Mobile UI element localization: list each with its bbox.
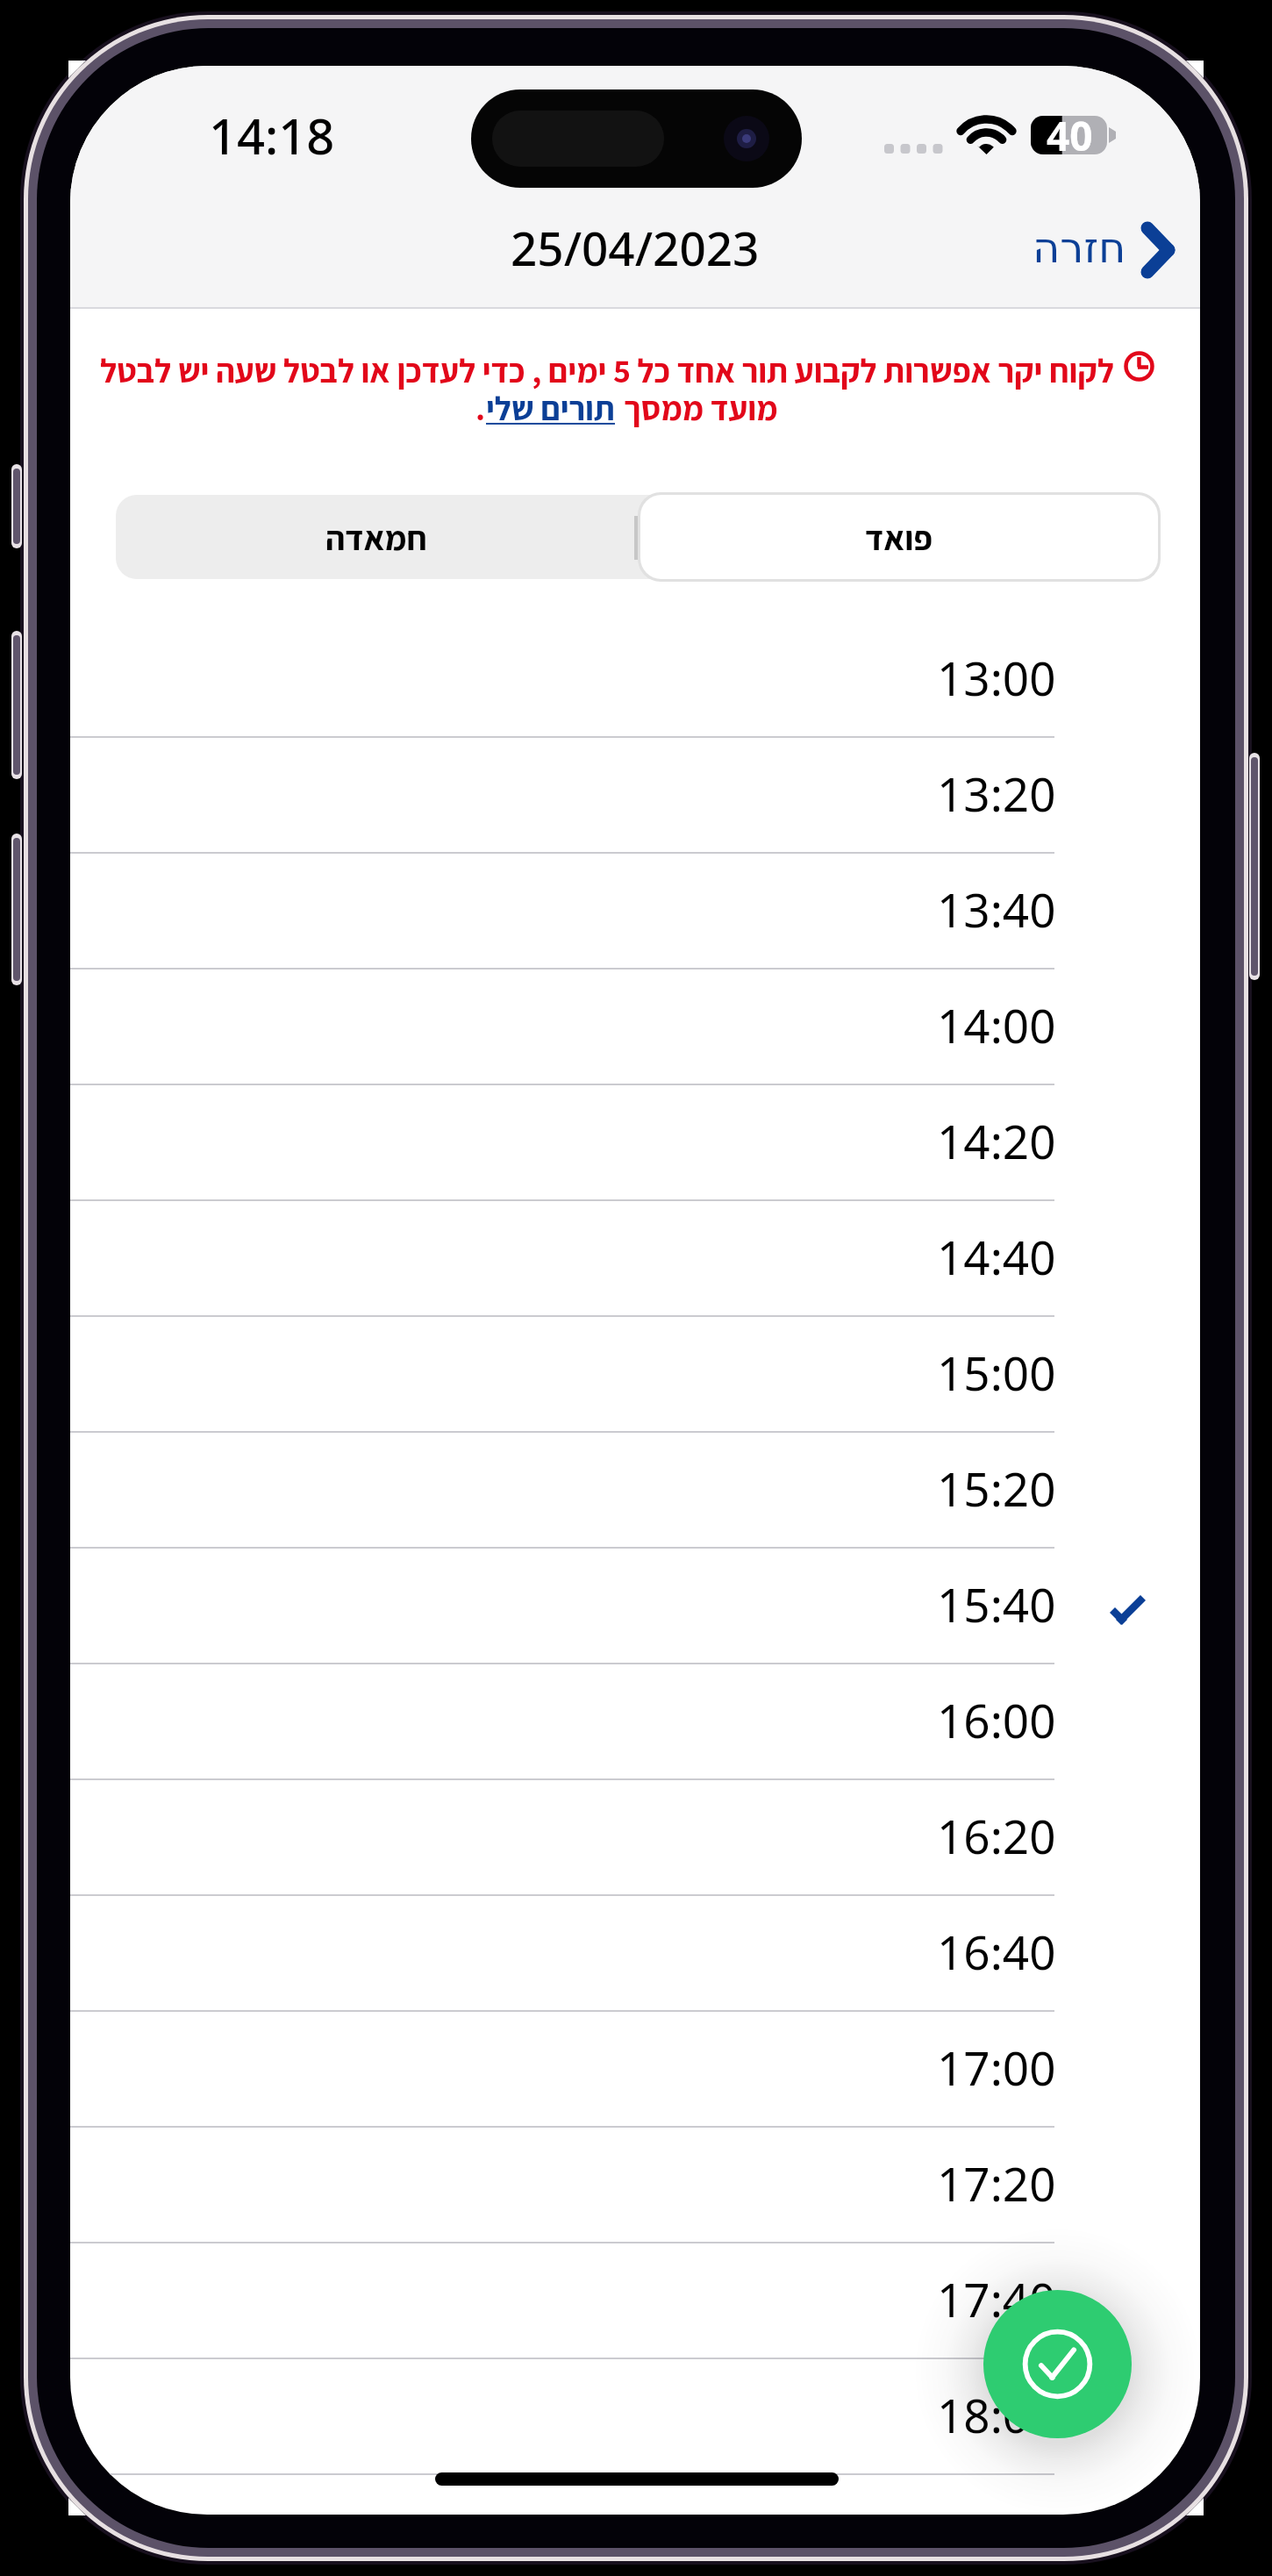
button[interactable]: 14:40 [70,1201,1200,1317]
button[interactable]: 16:40 [70,1896,1200,2012]
staticText: 14:20 [937,1109,1056,1172]
staticText: 15:00 [937,1341,1056,1404]
staticText: 15:40 [937,1572,1056,1635]
button[interactable]: 13:40 [70,854,1200,970]
button[interactable]: חמאדה [116,495,637,579]
button[interactable]: 16:20 [70,1780,1200,1896]
button[interactable]: 17:20 [70,2128,1200,2243]
staticText: 40 [1047,108,1093,163]
staticText: . [475,386,486,430]
staticText: 17:40 [937,2267,1056,2330]
staticText: לקוח יקר אפשרות לקבוע תור אחד כל 5 ימים … [84,348,1130,392]
staticText: 16:40 [937,1920,1056,1983]
button[interactable]: 14:20 [70,1085,1200,1201]
staticText: 14:18 [209,102,335,168]
staticText: 13:00 [937,646,1056,709]
staticText: 14:00 [937,993,1056,1056]
button[interactable]: 14:00 [70,970,1200,1085]
button[interactable]: 15:40 [70,1549,1200,1664]
button[interactable]: 13:00 [70,622,1200,738]
button[interactable]: 13:20 [70,738,1200,854]
button[interactable]: פואד [640,495,1158,579]
button[interactable]: 17:40 [70,2243,1200,2359]
staticText: 17:00 [937,2036,1056,2099]
staticText: מועד ממסך [624,386,778,430]
button[interactable]: תורים שלי [486,386,615,430]
staticText: 14:40 [937,1225,1056,1288]
staticText: חזרה [1033,223,1126,272]
staticText: 17:20 [937,2151,1056,2215]
button[interactable]: 15:00 [70,1317,1200,1433]
staticText: 18:00 [937,2383,1056,2446]
button[interactable]: 16:00 [70,1664,1200,1780]
staticText: חמאדה [325,515,427,560]
staticText: 16:20 [937,1804,1056,1867]
staticText: 16:00 [937,1688,1056,1751]
button[interactable]: Confirm appointment [983,2290,1132,2438]
staticText: פואד [865,515,933,560]
button[interactable]: 18:00 [70,2359,1200,2475]
button[interactable]: 17:00 [70,2012,1200,2128]
button[interactable]: חזרה [1033,218,1176,276]
staticText: 13:40 [937,877,1056,941]
staticText: 25/04/2023 [511,216,760,279]
button[interactable]: 15:20 [70,1433,1200,1549]
staticText: 15:20 [937,1456,1056,1520]
staticText: 13:20 [937,762,1056,825]
